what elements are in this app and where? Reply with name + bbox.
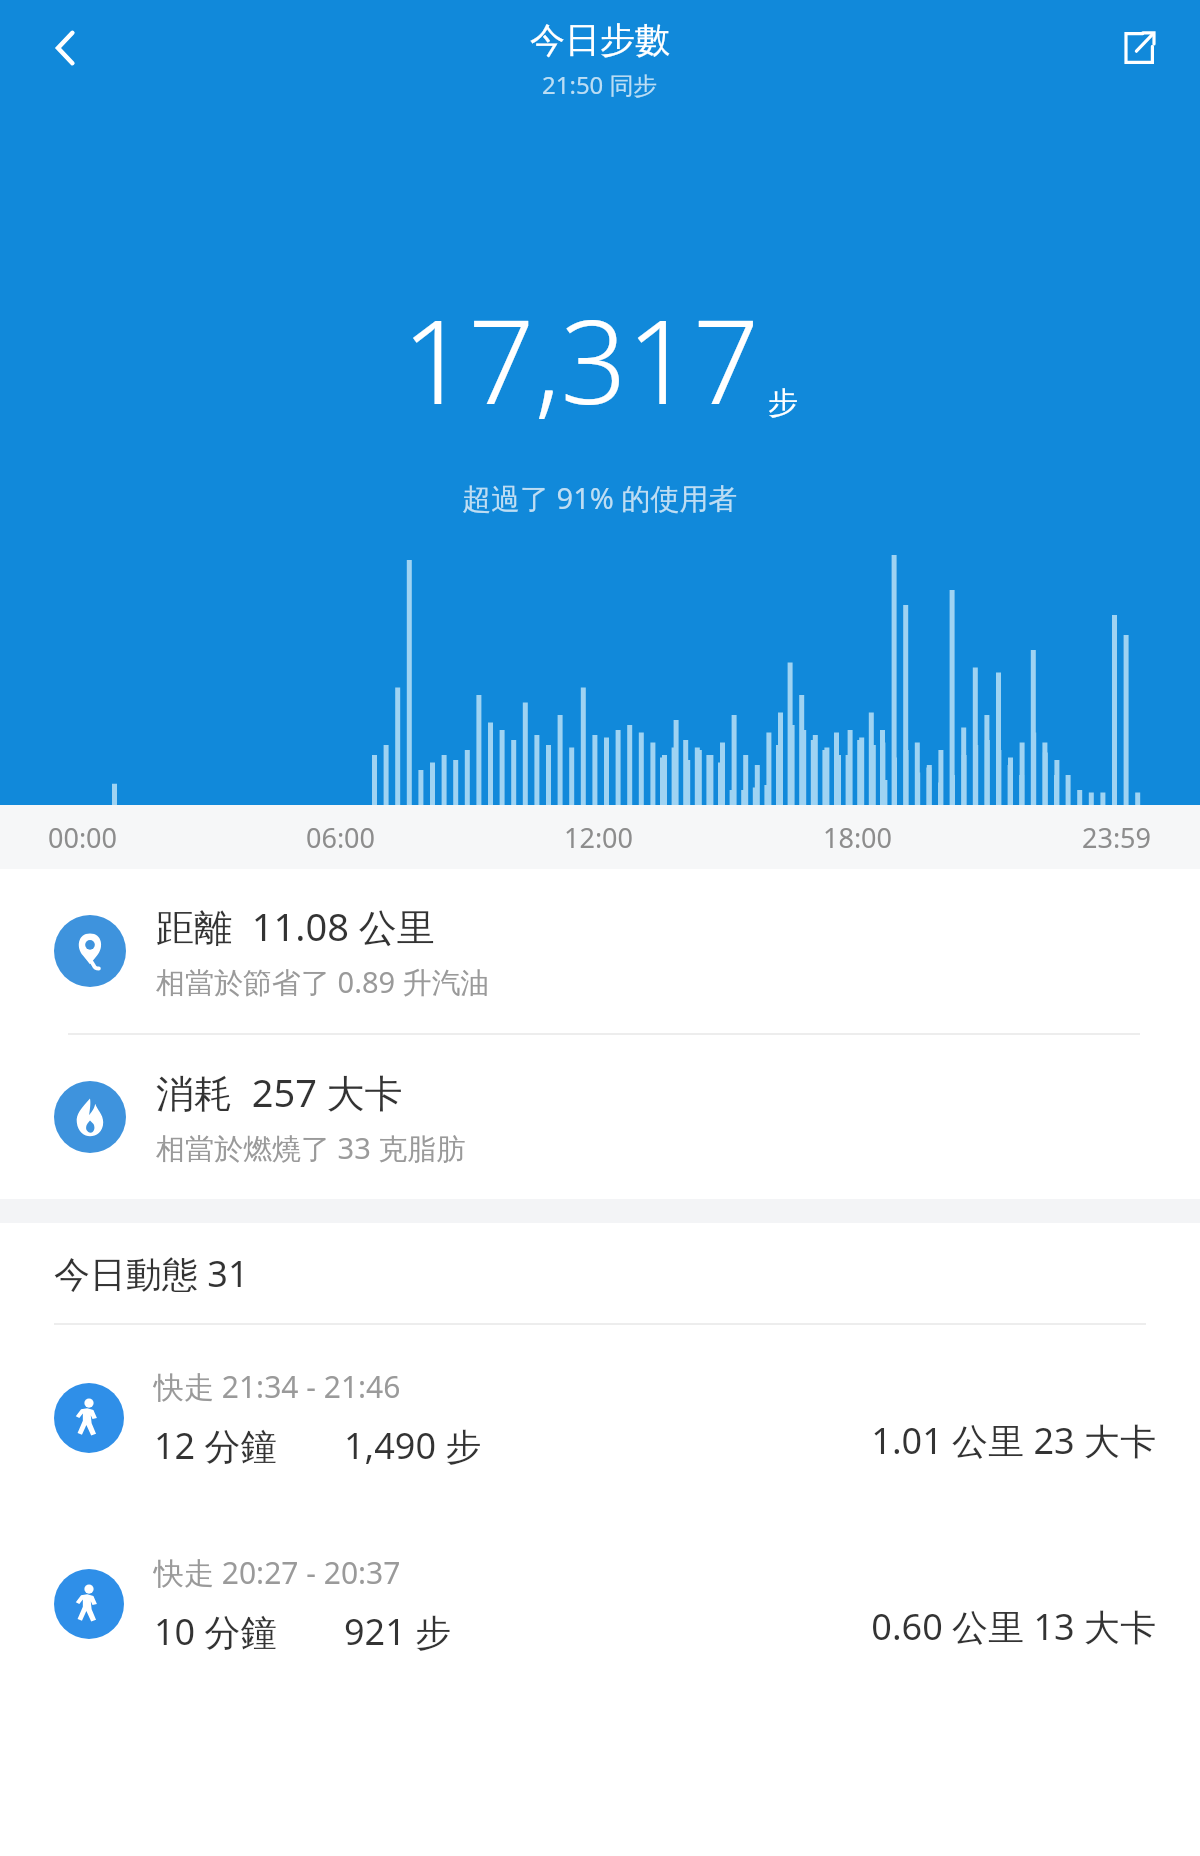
button[interactable]: 距離 11.08 公里: [0, 869, 1200, 1033]
staticText: 今日動態 31: [54, 1249, 249, 1298]
staticText: 1.01 公里 23 大卡: [871, 1416, 1156, 1465]
staticText: 12:00: [564, 819, 634, 856]
button[interactable]: Back: [30, 12, 102, 84]
staticText: 今日步數: [530, 18, 670, 62]
staticText: 10 分鐘: [154, 1607, 277, 1656]
button[interactable]: 消耗 257 大卡: [0, 1035, 1200, 1199]
staticText: 快走 20:27 - 20:37: [154, 1552, 401, 1593]
staticText: 00:00: [48, 819, 118, 856]
staticText: 相當於燃燒了 33 克脂肪: [156, 1128, 466, 1168]
staticText: 相當於節省了 0.89 升汽油: [156, 962, 490, 1002]
staticText: 921 步: [344, 1607, 452, 1656]
button[interactable]: Share: [1102, 12, 1174, 84]
staticText: 18:00: [823, 819, 893, 856]
staticText: 超過了 91% 的使用者: [462, 478, 738, 518]
staticText: 06:00: [306, 819, 376, 856]
staticText: 21:50 同步: [542, 68, 658, 101]
staticText: 消耗 257 大卡: [156, 1066, 403, 1118]
staticText: 距離 11.08 公里: [156, 900, 435, 952]
staticText: 17,317: [402, 280, 760, 438]
staticText: 快走 21:34 - 21:46: [154, 1366, 401, 1407]
staticText: 23:59: [1082, 819, 1152, 856]
button[interactable]: 快走 21:34 - 21:46: [0, 1325, 1200, 1511]
staticText: 0.60 公里 13 大卡: [871, 1602, 1156, 1651]
staticText: 步: [768, 384, 798, 422]
staticText: 12 分鐘: [154, 1421, 277, 1470]
staticText: 1,490 步: [344, 1421, 482, 1470]
button[interactable]: 快走 20:27 - 20:37: [0, 1511, 1200, 1697]
